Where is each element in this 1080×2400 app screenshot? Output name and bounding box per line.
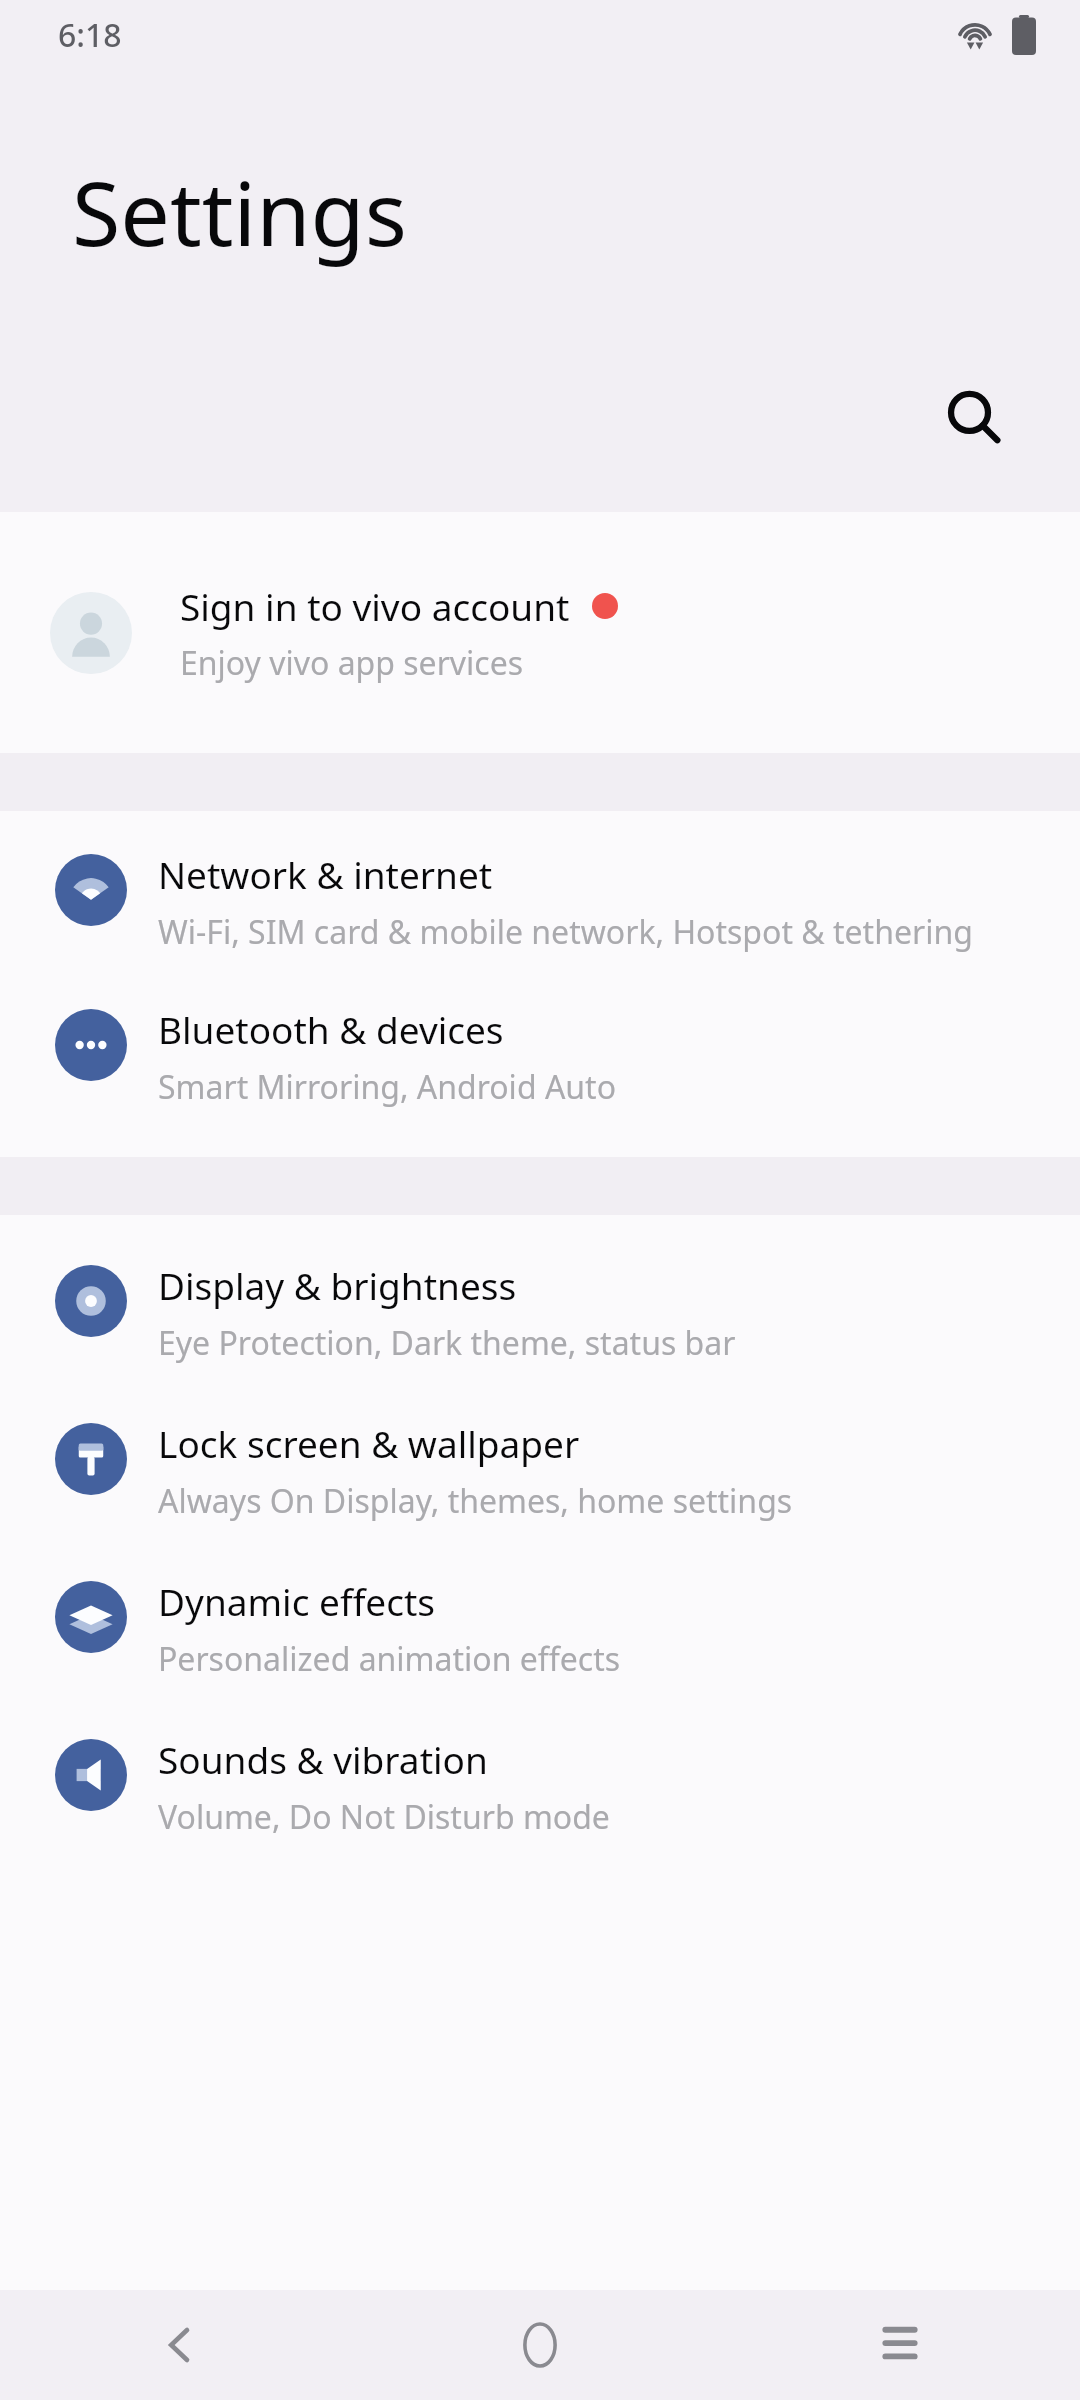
staticText: 6:18 [58, 13, 122, 57]
staticText: Always On Display, themes, home settings [158, 1479, 793, 1523]
button[interactable]: Home [360, 2290, 720, 2400]
staticText: Sounds & vibration [158, 1734, 488, 1784]
button[interactable]: Bluetooth & devices [0, 992, 1080, 1113]
staticText: Eye Protection, Dark theme, status bar [158, 1321, 736, 1365]
staticText: Smart Mirroring, Android Auto [158, 1065, 617, 1109]
staticText: Lock screen & wallpaper [158, 1418, 580, 1468]
button[interactable]: Back [0, 2290, 360, 2400]
staticText: Settings [72, 152, 407, 272]
staticText: Personalized animation effects [158, 1637, 621, 1681]
button[interactable]: Sign in to vivo account [0, 512, 1080, 753]
button[interactable]: Recent apps [720, 2290, 1080, 2400]
staticText: Wi-Fi, SIM card & mobile network, Hotspo… [158, 910, 973, 954]
button[interactable]: Network & internet [0, 837, 1080, 958]
staticText: Dynamic effects [158, 1576, 436, 1626]
staticText: Display & brightness [158, 1260, 517, 1310]
button[interactable]: Sounds & vibration [0, 1722, 1080, 1843]
button[interactable]: Search [922, 366, 1026, 470]
staticText: Volume, Do Not Disturb mode [158, 1795, 610, 1839]
staticText: Sign in to vivo account [180, 581, 570, 631]
staticText: Bluetooth & devices [158, 1004, 504, 1054]
staticText: Enjoy vivo app services [180, 641, 524, 685]
button[interactable]: Dynamic effects [0, 1564, 1080, 1685]
staticText: Network & internet [158, 849, 493, 899]
button[interactable]: Lock screen & wallpaper [0, 1406, 1080, 1527]
button[interactable]: Display & brightness [0, 1248, 1080, 1369]
